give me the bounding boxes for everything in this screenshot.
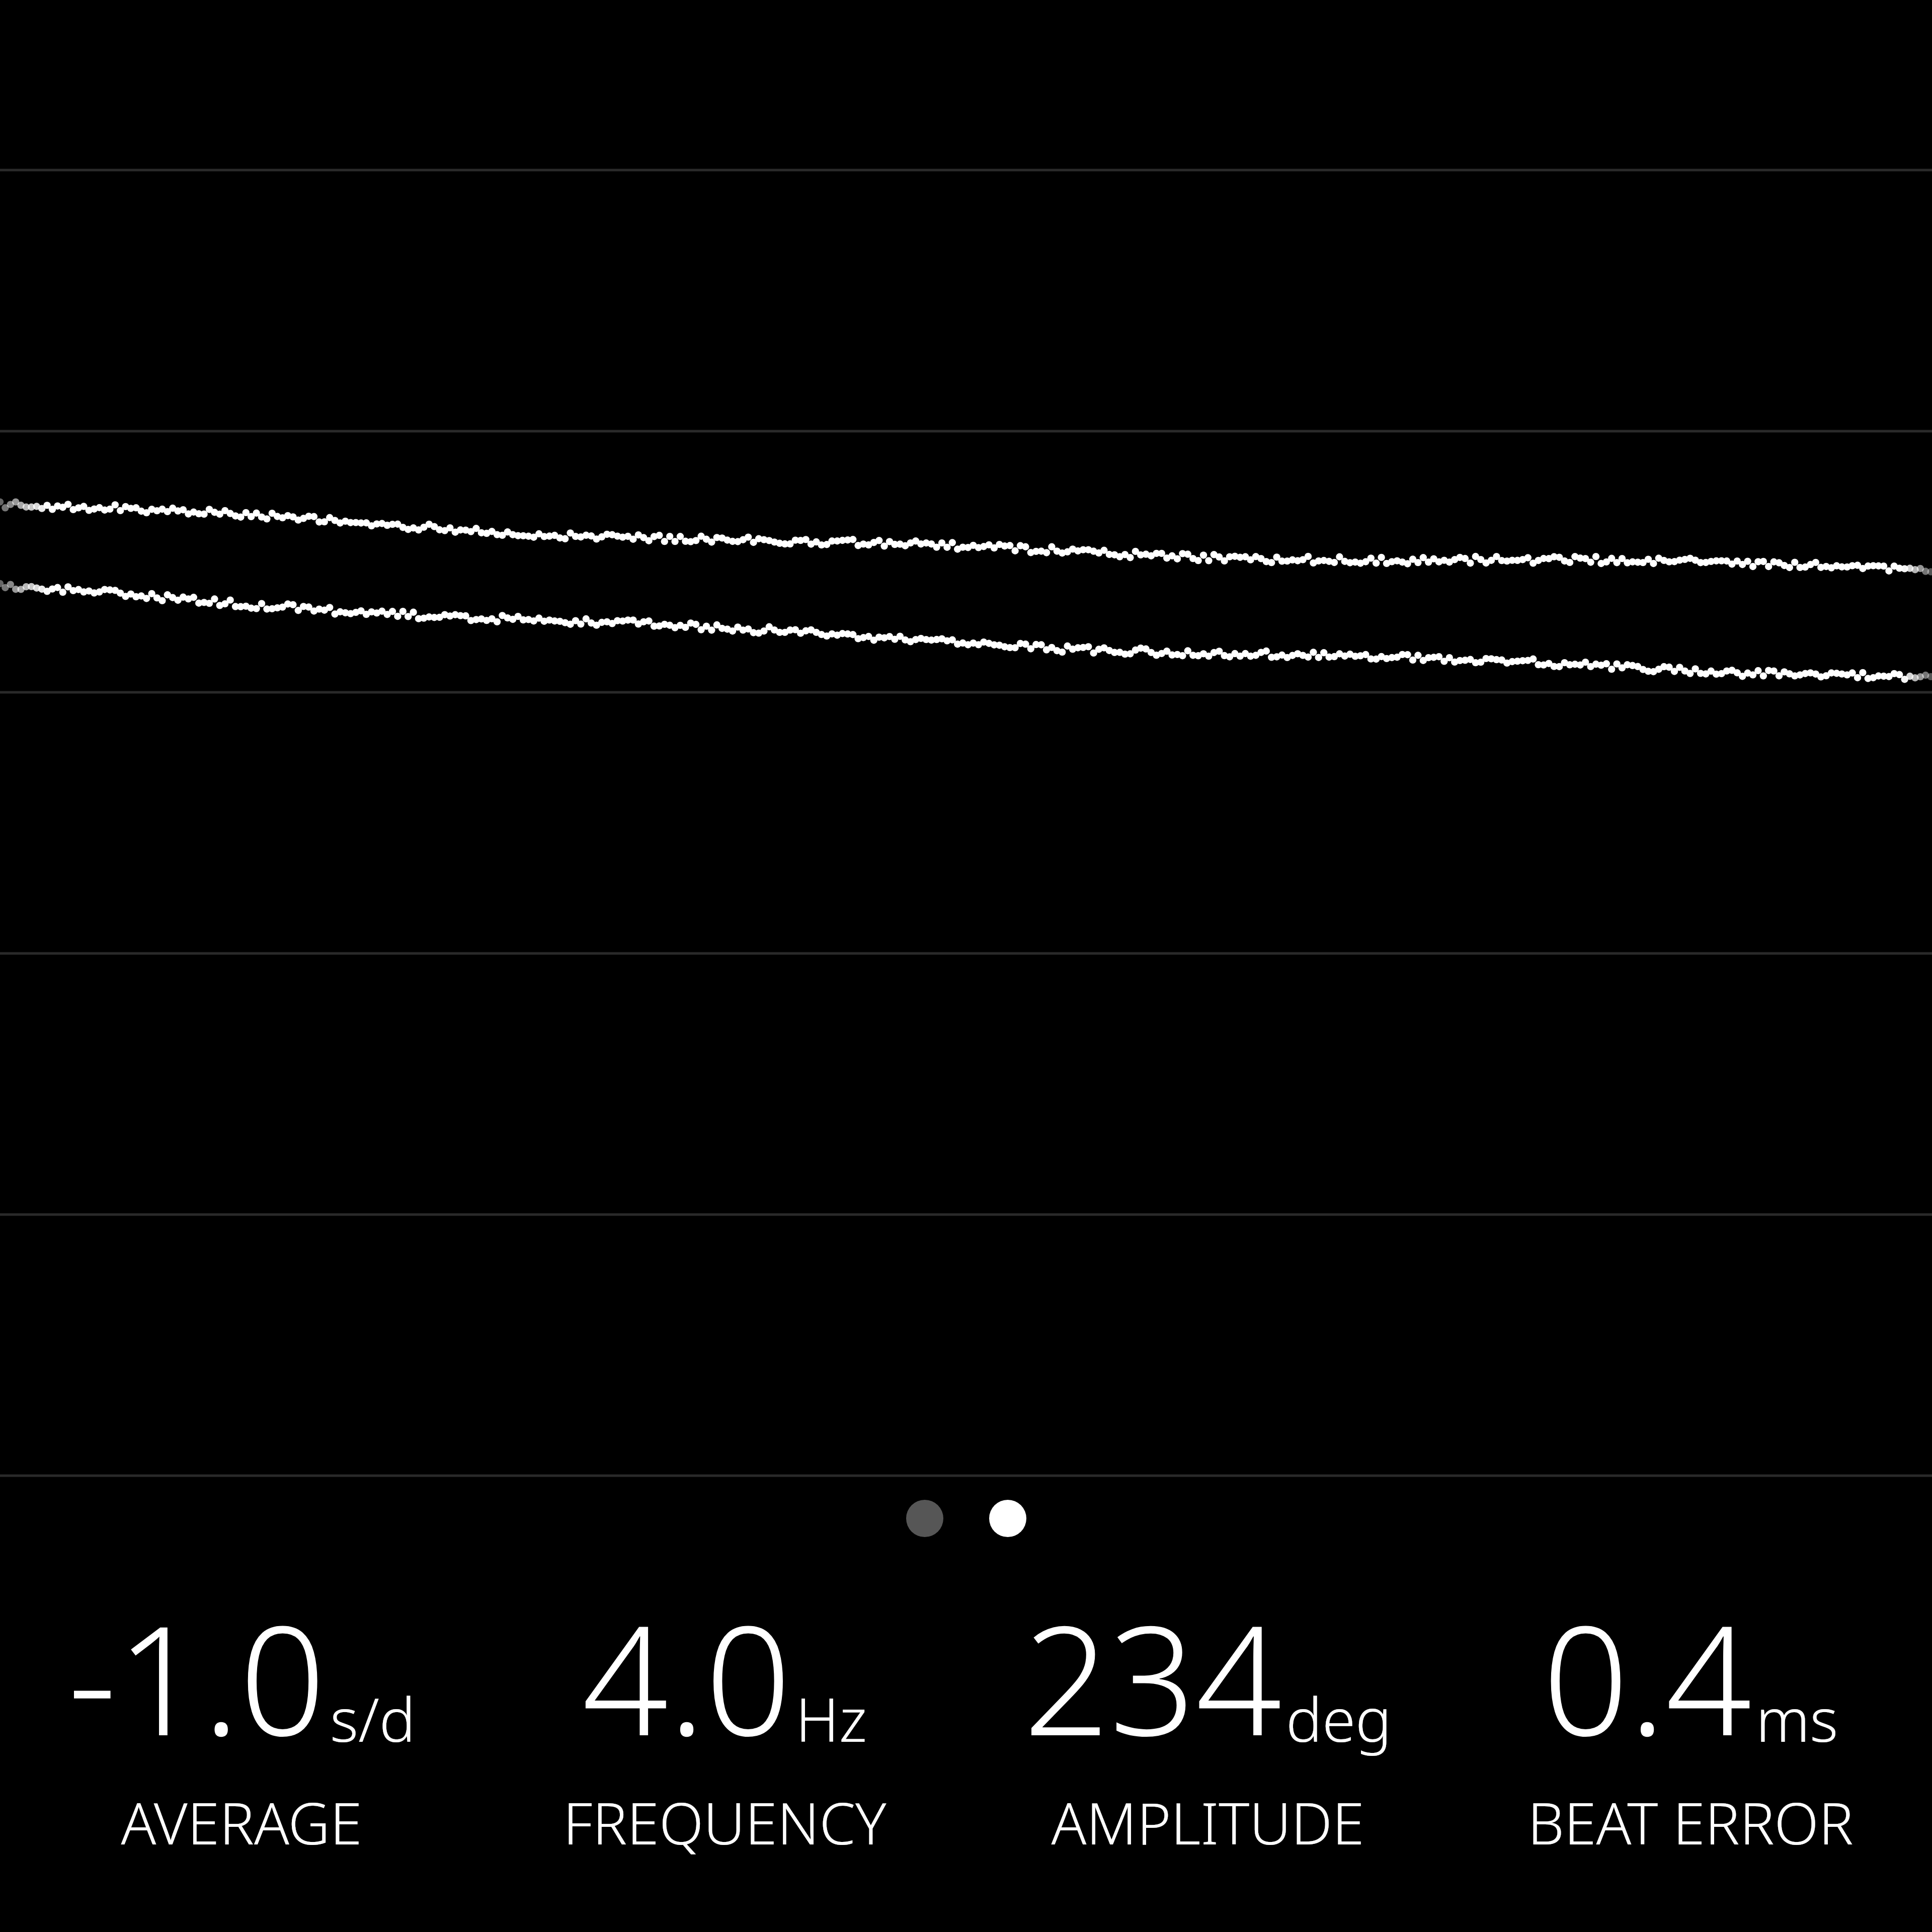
button[interactable]: Page 1 — [905, 1498, 945, 1539]
staticText: AMPLITUDE — [1051, 1783, 1364, 1862]
button[interactable]: -1.0 — [0, 1574, 483, 1862]
staticText: AVERAGE — [121, 1783, 362, 1862]
staticText: 4.0 — [582, 1574, 791, 1780]
staticText: -1.0 — [68, 1574, 326, 1780]
staticText: 0.4 — [1543, 1574, 1752, 1780]
button[interactable]: Page 2 — [988, 1498, 1028, 1539]
staticText: FREQUENCY — [563, 1783, 887, 1862]
staticText: deg — [1286, 1677, 1392, 1759]
staticText: BEAT ERROR — [1527, 1783, 1854, 1862]
button[interactable]: 234 — [966, 1574, 1449, 1862]
button[interactable]: 4.0 — [483, 1574, 966, 1862]
staticText: Hz — [795, 1677, 867, 1759]
staticText: ms — [1756, 1677, 1838, 1759]
staticText: s/d — [330, 1677, 416, 1759]
button[interactable]: 0.4 — [1449, 1574, 1932, 1862]
staticText: 234 — [1023, 1574, 1282, 1780]
